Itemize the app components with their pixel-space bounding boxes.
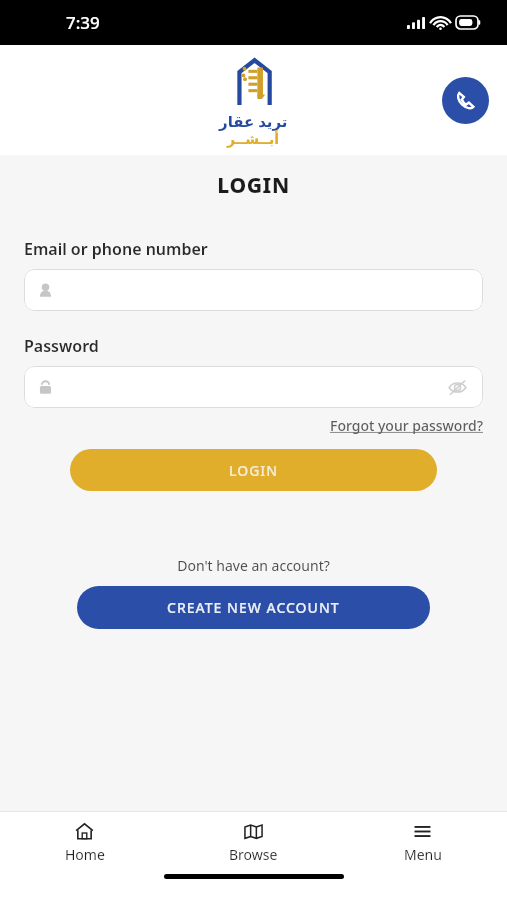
staticText: Forgot your password? [330,416,483,435]
staticText: LOGIN [229,461,279,480]
button[interactable]: CREATE NEW ACCOUNT [77,586,430,629]
staticText: Browse [229,845,278,864]
staticText: Menu [404,845,442,864]
button[interactable]: Menu [338,812,507,874]
staticText: Email or phone number [24,238,483,260]
staticText: Don't have an account? [0,556,507,575]
button[interactable]: Home [0,812,169,874]
button[interactable]: Show password [24,366,483,408]
staticText: أبــشــر [227,131,280,147]
staticText: 7:39 [66,11,100,34]
button[interactable]: Forgot your password? [330,416,483,435]
staticText: LOGIN [0,171,507,200]
button[interactable] [24,269,483,311]
button[interactable]: LOGIN [70,449,437,491]
button[interactable]: Show password [445,375,469,399]
button[interactable]: Call [442,77,489,124]
staticText: تريد عقار [219,111,288,131]
staticText: Home [65,845,105,864]
staticText: Password [24,335,483,357]
staticText: CREATE NEW ACCOUNT [167,598,340,617]
button[interactable]: Browse [169,812,338,874]
